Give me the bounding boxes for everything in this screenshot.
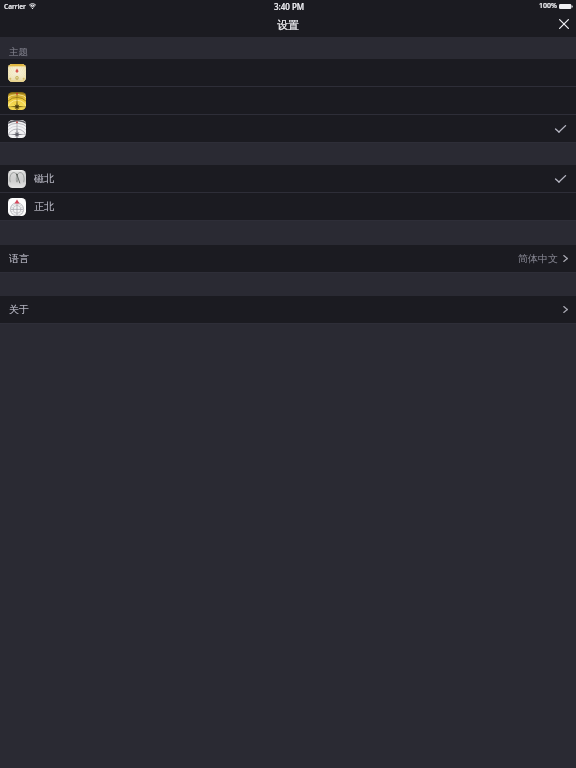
staticText: 正北 (34, 200, 54, 213)
staticText: 主题 (9, 46, 28, 58)
staticText: 3:40 PM (274, 1, 305, 12)
staticText: 磁北 (34, 172, 54, 185)
staticText: 设置 (277, 18, 299, 32)
button[interactable]: Close (552, 13, 576, 35)
button[interactable]: 关于 (0, 296, 576, 323)
staticText: 语言 (9, 252, 29, 265)
staticText: 100% (539, 1, 557, 11)
staticText: 简体中文 (518, 252, 558, 265)
staticText: Carrier (4, 2, 26, 11)
button[interactable]: Silver theme (0, 115, 576, 142)
button[interactable]: 语言 (0, 245, 576, 272)
button[interactable]: Vintage theme (0, 59, 576, 86)
button[interactable]: 正北 (0, 193, 576, 220)
staticText: 关于 (9, 303, 29, 316)
button[interactable]: 磁北 (0, 165, 576, 192)
button[interactable]: Gold theme (0, 87, 576, 114)
